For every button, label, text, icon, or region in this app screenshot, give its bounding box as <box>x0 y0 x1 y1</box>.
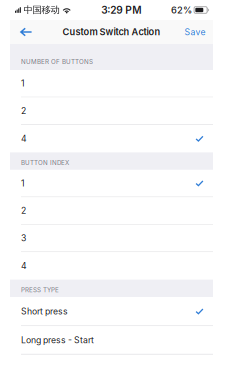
staticText: 2 <box>21 205 26 216</box>
staticText: 62% <box>171 4 192 16</box>
button[interactable]: Save <box>182 20 208 44</box>
button[interactable]: 1 <box>10 170 213 197</box>
button[interactable]: 3 <box>10 225 213 252</box>
staticText: Long press - Start <box>21 335 94 345</box>
button[interactable]: Long press - Start <box>10 326 213 354</box>
button[interactable]: 4 <box>10 252 213 280</box>
staticText: 4 <box>21 261 27 271</box>
staticText: Short press <box>21 306 68 317</box>
staticText: 1 <box>21 78 25 89</box>
staticText: 4 <box>21 133 27 144</box>
staticText: NUMBER OF BUTTONS <box>21 58 93 65</box>
staticText: BUTTON INDEX <box>21 159 69 166</box>
staticText: PRESS TYPE <box>21 286 59 294</box>
button[interactable]: Back <box>14 20 38 44</box>
staticText: 3:29 PM <box>101 4 141 16</box>
staticText: Save <box>184 27 205 37</box>
button[interactable]: 2 <box>10 197 213 225</box>
staticText: 2 <box>21 106 26 116</box>
button[interactable]: 4 <box>10 125 213 152</box>
button[interactable]: 2 <box>10 97 213 125</box>
button[interactable]: Short press <box>10 297 213 326</box>
staticText: 1 <box>21 178 25 188</box>
staticText: Custom Switch Action <box>62 26 160 38</box>
staticText: 中国移动 <box>23 4 59 16</box>
staticText: 3 <box>21 233 26 243</box>
button[interactable]: 1 <box>10 70 213 97</box>
